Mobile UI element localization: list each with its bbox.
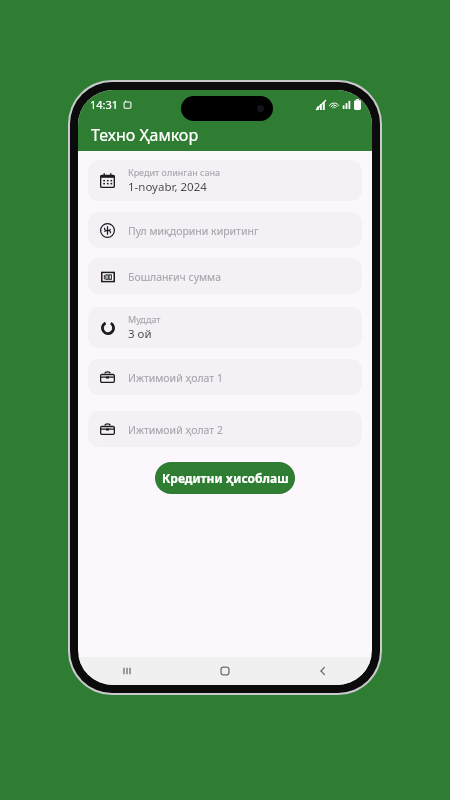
button[interactable]: Back — [274, 657, 372, 685]
staticText: Муддат — [128, 313, 161, 325]
button[interactable]: Бошланғич сумма — [88, 258, 362, 294]
staticText: 3 ой — [128, 326, 152, 342]
staticText: Кредитни ҳисоблаш — [162, 470, 289, 486]
button[interactable]: Кредит олинган сана — [88, 160, 362, 201]
button[interactable]: Ижтимоий ҳолат 1 — [88, 359, 362, 395]
button[interactable]: Муддат — [88, 307, 362, 348]
button[interactable]: Recent apps — [78, 657, 176, 685]
staticText: Пул миқдорини киритинг — [128, 224, 259, 238]
staticText: Бошланғич сумма — [128, 270, 221, 284]
button[interactable]: Home — [176, 657, 274, 685]
staticText: Техно Ҳамкор — [91, 124, 199, 146]
staticText: 1-noyabr, 2024 — [128, 179, 207, 195]
staticText: Кредит олинган сана — [128, 166, 221, 178]
staticText: 14:31 — [90, 97, 119, 112]
button[interactable]: Ижтимоий ҳолат 2 — [88, 411, 362, 447]
button[interactable]: Пул миқдорини киритинг — [88, 212, 362, 248]
staticText: Ижтимоий ҳолат 2 — [128, 423, 223, 437]
button[interactable]: Кредитни ҳисоблаш — [155, 462, 295, 494]
staticText: Ижтимоий ҳолат 1 — [128, 371, 223, 385]
